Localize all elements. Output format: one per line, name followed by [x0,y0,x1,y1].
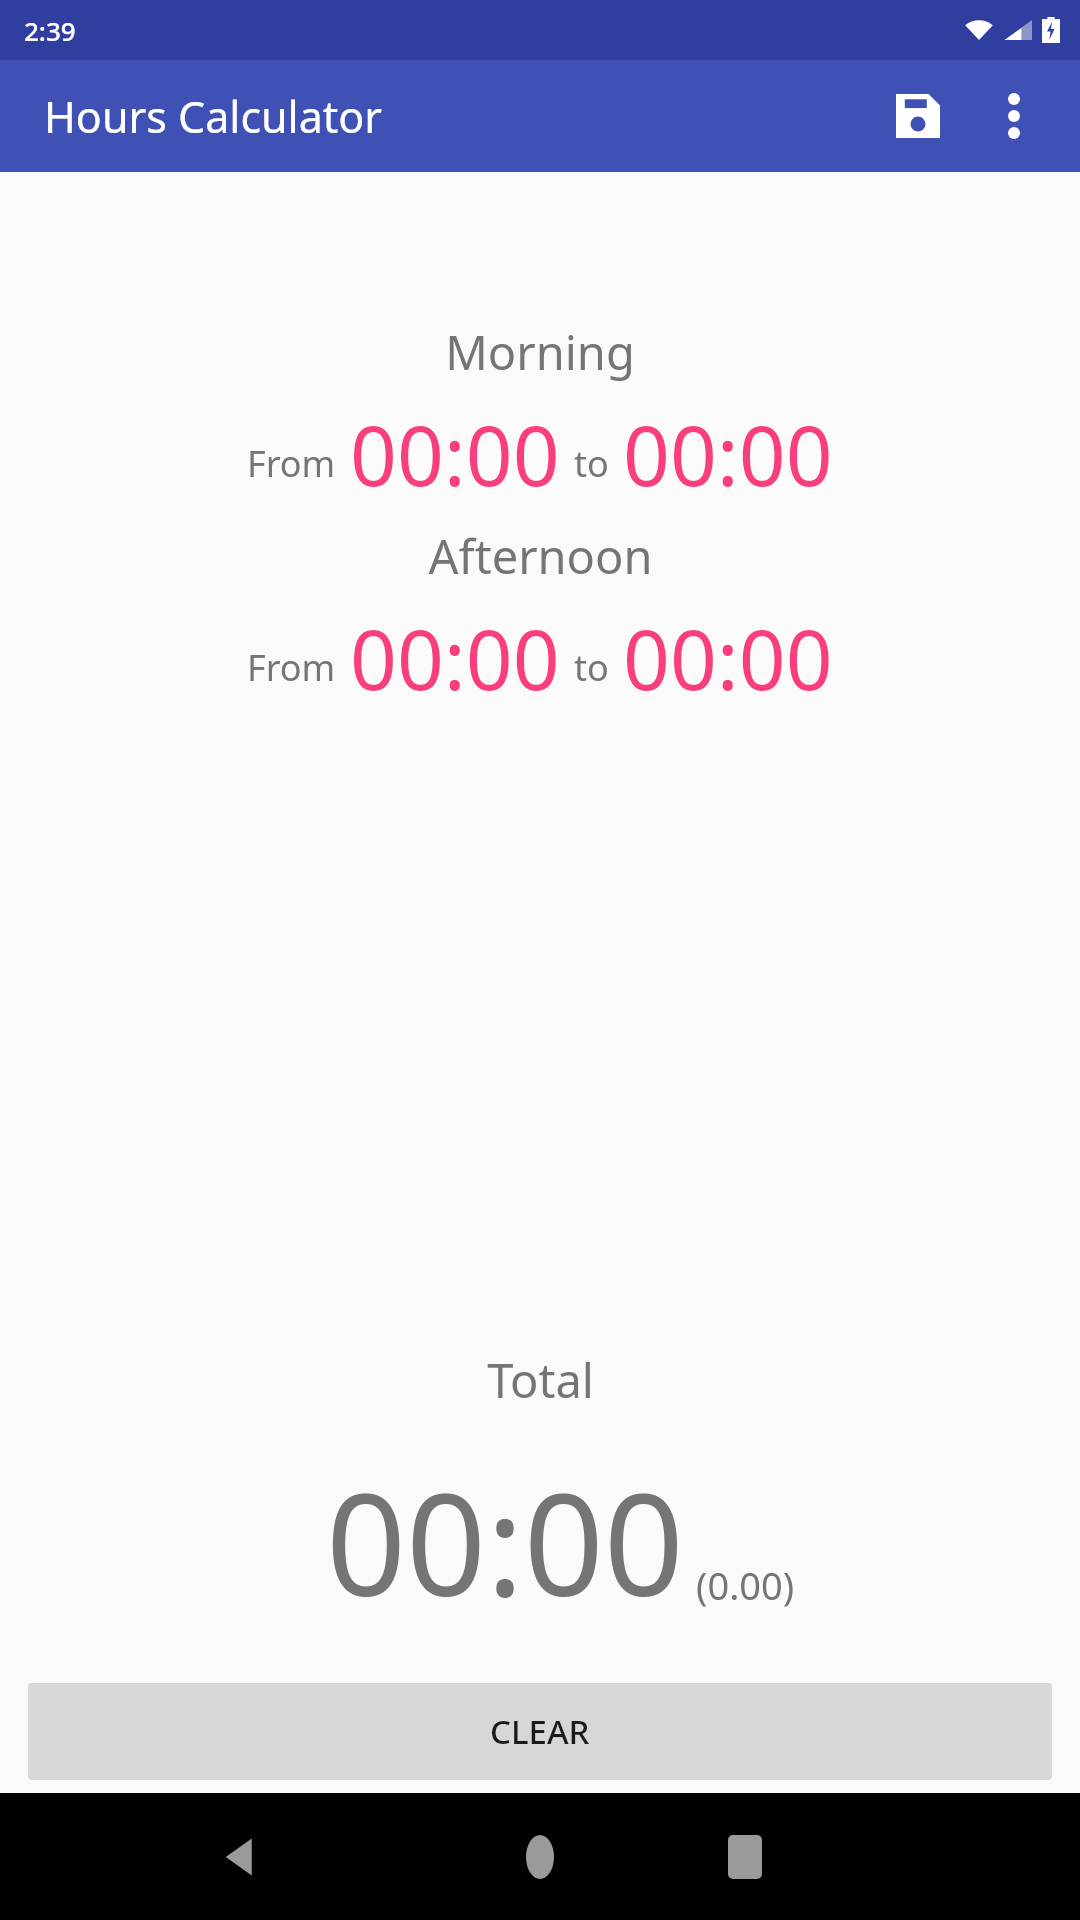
staticText: Hours Calculator [44,87,383,146]
button[interactable]: Home [480,1797,600,1917]
staticText: 00:00 [326,1446,684,1637]
button[interactable]: Recent apps [685,1797,805,1917]
button[interactable]: More options [966,68,1062,164]
staticText: From [247,643,336,692]
staticText: (0.00) [696,1559,795,1611]
button[interactable]: Save [870,68,966,164]
staticText: 00:00 [623,398,833,510]
staticText: From [247,439,336,488]
staticText: 2:39 [24,13,76,48]
button[interactable]: Back [180,1797,300,1917]
button[interactable]: CLEAR [28,1683,1052,1780]
staticText: 00:00 [350,398,560,510]
staticText: 00:00 [623,602,833,714]
staticText: Morning [445,320,635,384]
button[interactable]: 00:00 [623,398,833,510]
button[interactable]: 00:00 [350,398,560,510]
staticText: to [574,643,609,692]
staticText: 00:00 [350,602,560,714]
staticText: to [574,439,609,488]
button[interactable]: 00:00 [623,602,833,714]
staticText: Total [487,1348,594,1412]
staticText: CLEAR [490,1709,590,1754]
button[interactable]: 00:00 [350,602,560,714]
staticText: Afternoon [428,524,653,588]
